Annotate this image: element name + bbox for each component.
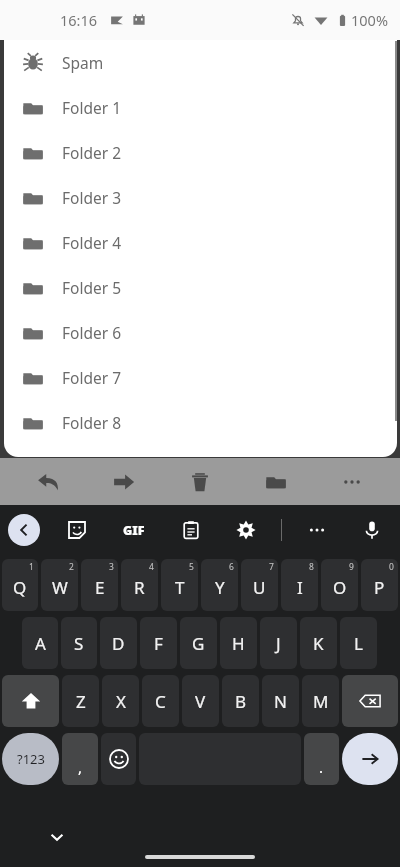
button[interactable]: C [142,675,179,727]
button[interactable]: Delete [162,458,238,505]
button[interactable]: Clipboard [177,516,205,544]
button[interactable]: Folder 6 [4,310,397,355]
button[interactable]: 3 [81,559,118,611]
staticText: D [112,632,125,655]
button[interactable]: Backspace [342,675,398,727]
staticText: Z [76,690,86,713]
staticText: G [192,632,205,655]
staticText: 8 [309,561,314,573]
button[interactable]: M [302,675,339,727]
button[interactable]: Folder 2 [4,130,397,175]
staticText: 6 [229,561,234,573]
button[interactable]: GIF [118,514,150,546]
button[interactable]: Z [62,675,99,727]
button[interactable]: X [102,675,139,727]
staticText: Folder 4 [62,232,121,253]
staticText: Folder 5 [62,277,121,298]
button[interactable]: Folder 4 [4,220,397,265]
staticText: C [155,690,166,713]
staticText: Folder 6 [62,322,121,343]
button[interactable]: 7 [241,559,278,611]
button[interactable]: Folder 5 [4,265,397,310]
staticText: Q [13,576,27,599]
button[interactable]: J [260,617,297,669]
button[interactable]: 6 [201,559,238,611]
staticText: 1 [29,561,34,573]
button[interactable]: Move to folder [238,458,314,505]
button[interactable]: L [340,617,377,669]
staticText: , [78,757,83,777]
button[interactable]: Forward [86,458,162,505]
button[interactable]: , [62,733,98,785]
staticText: I [297,576,303,599]
staticText: E [95,576,105,599]
staticText: 16:16 [60,10,98,30]
staticText: Folder 8 [62,412,121,433]
staticText: GIF [123,522,145,539]
button[interactable]: N [262,675,299,727]
button[interactable]: Voice input [358,516,386,544]
staticText: O [333,576,347,599]
button[interactable]: Folder 8 [4,400,397,445]
button[interactable]: D [100,617,137,669]
button[interactable]: Spam [4,40,397,85]
button[interactable]: Settings [232,516,260,544]
staticText: F [154,632,163,655]
button[interactable]: Emoji [101,733,136,785]
button[interactable]: Stickers [63,516,91,544]
button[interactable]: B [222,675,259,727]
button[interactable]: S [61,617,97,669]
button[interactable]: G [180,617,217,669]
staticText: 5 [189,561,194,573]
button[interactable]: More options [314,458,390,505]
button[interactable]: More [303,516,331,544]
staticText: K [313,632,324,655]
staticText: Folder 3 [62,187,121,208]
button[interactable]: 2 [41,559,78,611]
staticText: R [134,576,145,599]
button[interactable]: 1 [2,559,38,611]
staticText: N [274,690,287,713]
staticText: M [313,690,329,713]
button[interactable]: 5 [161,559,198,611]
staticText: 9 [349,561,354,573]
staticText: J [276,632,281,655]
button[interactable]: . [304,733,339,785]
staticText: ?123 [17,750,45,768]
staticText: 7 [269,561,274,573]
staticText: U [253,576,266,599]
button[interactable]: Folder 7 [4,355,397,400]
button[interactable]: F [140,617,177,669]
button[interactable]: V [182,675,219,727]
button[interactable]: 4 [121,559,158,611]
button[interactable]: K [300,617,337,669]
staticText: W [52,576,68,599]
button[interactable]: Folder 1 [4,85,397,130]
staticText: A [35,632,46,655]
button[interactable]: Shift [2,675,59,727]
staticText: Folder 1 [62,97,121,118]
button[interactable]: 9 [321,559,358,611]
staticText: 100% [351,10,388,30]
button[interactable]: Back [8,514,40,546]
button[interactable]: ?123 [2,733,59,785]
staticText: L [354,632,363,655]
button[interactable]: Hide keyboard [42,822,72,852]
button[interactable]: 8 [281,559,318,611]
button[interactable]: H [220,617,257,669]
button[interactable]: Enter [342,733,398,785]
staticText: P [374,576,385,599]
staticText: 4 [149,561,154,573]
button[interactable]: Reply [10,458,86,505]
staticText: H [232,632,245,655]
staticText: T [175,576,185,599]
staticText: X [116,690,126,713]
staticText: S [74,632,84,655]
button[interactable]: A [22,617,58,669]
button[interactable]: 0 [361,559,398,611]
staticText: Folder 2 [62,142,121,163]
staticText: Y [215,576,225,599]
staticText: Folder 7 [62,367,121,388]
button[interactable]: Folder 3 [4,175,397,220]
